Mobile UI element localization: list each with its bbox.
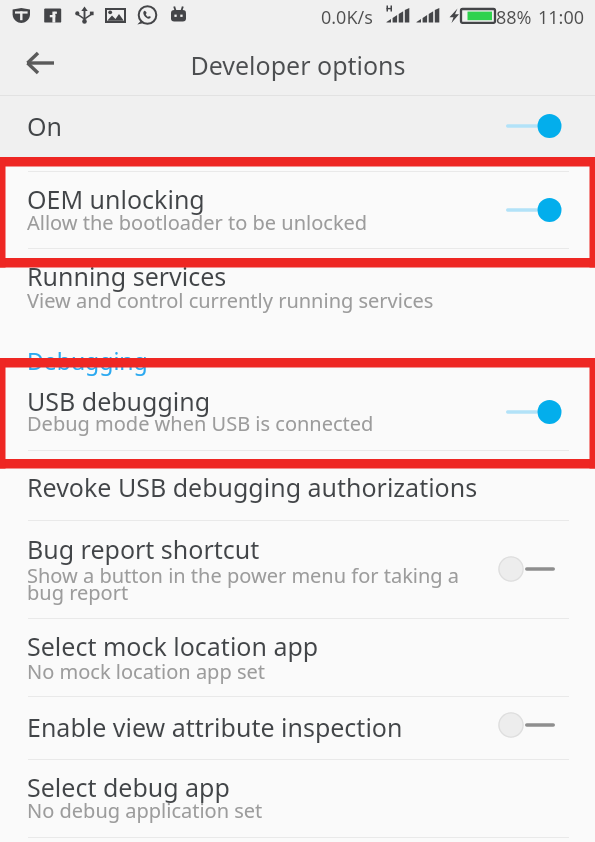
staticText: Select debug app bbox=[27, 770, 230, 804]
staticText: View and control currently running servi… bbox=[27, 287, 434, 314]
staticText: Enable view attribute inspection bbox=[27, 710, 403, 744]
staticText: Select mock location app bbox=[27, 629, 319, 663]
button[interactable]: Revoke USB debugging authorizations bbox=[0, 450, 595, 519]
button[interactable]: OEM unlocking bbox=[0, 171, 595, 248]
button[interactable]: Toggle on bbox=[496, 188, 572, 232]
button[interactable]: Back bbox=[16, 42, 65, 84]
staticText: On bbox=[27, 109, 62, 143]
staticText: Revoke USB debugging authorizations bbox=[27, 470, 478, 504]
staticText: Allow the bootloader to be unlocked bbox=[27, 209, 368, 236]
staticText: Bug report shortcut bbox=[27, 532, 260, 566]
staticText: Debugging bbox=[27, 345, 148, 376]
staticText: 88% bbox=[496, 5, 532, 30]
staticText: OEM unlocking bbox=[27, 182, 205, 216]
button[interactable]: On bbox=[0, 96, 595, 157]
staticText: Running services bbox=[27, 259, 227, 293]
staticText: USB debugging bbox=[27, 384, 211, 418]
staticText: No debug application set bbox=[27, 797, 263, 824]
button[interactable]: Toggle off bbox=[492, 547, 568, 591]
staticText: Show a button in the power menu for taki… bbox=[27, 562, 460, 606]
staticText: No mock location app set bbox=[27, 658, 265, 685]
button[interactable]: Toggle on bbox=[496, 390, 572, 434]
button[interactable]: Bug report shortcut bbox=[0, 520, 595, 617]
button[interactable]: Toggle off bbox=[492, 703, 568, 747]
button[interactable]: Toggle on bbox=[496, 104, 572, 148]
button[interactable]: USB debugging bbox=[0, 374, 595, 450]
button[interactable]: Select debug app bbox=[0, 760, 595, 837]
button[interactable]: Enable view attribute inspection bbox=[0, 696, 595, 759]
staticText: 11:00 bbox=[538, 5, 585, 30]
staticText: Debug mode when USB is connected bbox=[27, 410, 374, 437]
staticText: 0.0K/s bbox=[321, 5, 373, 30]
staticText: Developer options bbox=[190, 48, 406, 82]
button[interactable]: Running services bbox=[0, 248, 595, 318]
button[interactable]: Select mock location app bbox=[0, 618, 595, 695]
